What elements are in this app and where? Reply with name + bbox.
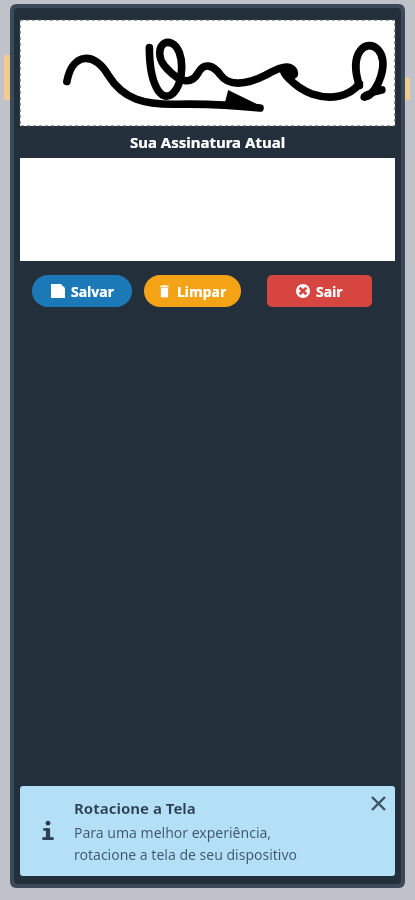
staticText: Sair	[316, 282, 343, 301]
button[interactable]: Sair	[267, 275, 372, 307]
button[interactable]: Limpar	[144, 275, 241, 307]
button[interactable]: Salvar	[32, 275, 132, 307]
staticText: Rotacione a Tela	[74, 798, 196, 818]
staticText: Salvar	[71, 282, 114, 301]
staticText: Limpar	[177, 282, 227, 301]
staticText: Para uma melhor experiência,	[74, 823, 272, 842]
staticText: Sua Assinatura Atual	[14, 132, 401, 152]
staticText: rotacione a tela de seu dispositivo	[74, 845, 298, 864]
button[interactable]: Fechar aviso	[367, 792, 389, 814]
button[interactable]: Rotacione a Tela	[20, 786, 395, 876]
